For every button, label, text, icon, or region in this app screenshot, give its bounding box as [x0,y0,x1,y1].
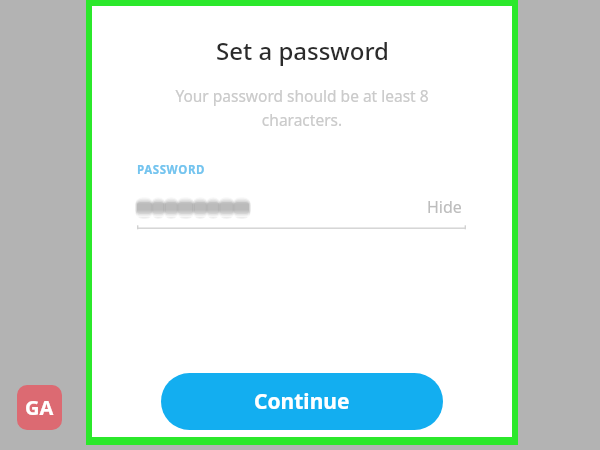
button[interactable]: Continue [161,373,443,430]
staticText: Hide [427,196,462,218]
staticText: GA [25,394,54,421]
staticText: PASSWORD [137,162,206,178]
staticText: Continue [254,387,350,416]
staticText: Your password should be at least 8 chara… [136,85,468,130]
other: GA logo [17,385,62,430]
staticText: Set a password [216,34,389,67]
button[interactable]: Hide [423,194,466,220]
